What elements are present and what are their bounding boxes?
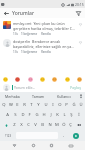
- button[interactable]: N: [46, 120, 53, 130]
- button[interactable]: J: [47, 110, 54, 120]
- button[interactable]: Z: [11, 120, 18, 130]
- staticText: Yorum ekle...: [14, 85, 36, 90]
- button[interactable]: X: [18, 120, 25, 130]
- button[interactable]: Emoji: [52, 77, 57, 82]
- staticText: mmlxy.cmt Yeni çıkan bu ürün gerçekten h…: [13, 21, 76, 31]
- button[interactable]: Q: [1, 100, 7, 110]
- button[interactable]: Emoji: [77, 77, 82, 82]
- button[interactable]: M: [53, 120, 60, 130]
- button[interactable]: Merhaba: [0, 92, 25, 100]
- button[interactable]: mmlxy.cmt Yeni çıkan bu ürün gerçekten h…: [0, 18, 85, 36]
- button[interactable]: T: [28, 100, 35, 110]
- button[interactable]: Y: [35, 100, 42, 110]
- button[interactable]: Beğen: [77, 21, 83, 27]
- staticText: E: [16, 102, 19, 108]
- button[interactable]: Paylaş: [69, 85, 82, 90]
- staticText: L: [63, 112, 66, 118]
- button[interactable]: Emoji: [28, 77, 33, 82]
- button[interactable]: D: [19, 110, 26, 120]
- staticText: W: [9, 102, 13, 108]
- button[interactable]: O: [56, 100, 63, 110]
- staticText: C: [27, 122, 30, 128]
- staticText: R: [23, 102, 26, 108]
- staticText: J: [50, 112, 52, 118]
- button[interactable]: Geri: [2, 9, 10, 17]
- button[interactable]: U: [42, 100, 49, 110]
- button[interactable]: S: [11, 110, 19, 120]
- button[interactable]: W: [7, 100, 14, 110]
- button[interactable]: Sesle yaz: [77, 92, 85, 100]
- button[interactable]: Emoji: [3, 77, 8, 82]
- staticText: 1 beğenme: [21, 50, 38, 54]
- button[interactable]: B: [39, 120, 46, 130]
- button[interactable]: Ü: [77, 100, 84, 110]
- button[interactable]: Ö: [60, 120, 67, 130]
- staticText: Merhaba: [5, 94, 20, 99]
- button[interactable]: Emoji: [15, 77, 20, 82]
- staticText: 13s: [13, 50, 18, 54]
- button[interactable]: Tamam: [25, 92, 51, 100]
- button[interactable]: F: [26, 110, 33, 120]
- button[interactable]: İ: [75, 110, 82, 120]
- button[interactable]: C: [25, 120, 32, 130]
- button[interactable]: G: [33, 110, 40, 120]
- staticText: Tamam: [32, 94, 45, 99]
- staticText: A: [6, 112, 9, 118]
- staticText: N: [48, 122, 52, 128]
- button[interactable]: Ğ: [70, 100, 77, 110]
- button[interactable]: Ş: [68, 110, 75, 120]
- button[interactable]: Ana ekran: [29, 141, 38, 150]
- staticText: K: [56, 112, 59, 118]
- staticText: Z: [13, 122, 16, 128]
- staticText: 1 beğenme: [21, 32, 38, 36]
- button[interactable]: Ç: [67, 120, 74, 130]
- staticText: ?123: [5, 134, 12, 138]
- staticText: Kullanıcı: [57, 94, 71, 99]
- button[interactable]: Yanıtla: [41, 50, 51, 54]
- button[interactable]: dostperlin Beraberce ancak başarabiliriz…: [0, 36, 85, 54]
- button[interactable]: R: [21, 100, 28, 110]
- button[interactable]: Beğen: [77, 39, 83, 45]
- staticText: dostperlin Beraberce ancak başarabiliriz…: [13, 39, 76, 49]
- staticText: S: [14, 112, 17, 118]
- staticText: P: [65, 102, 68, 108]
- button[interactable]: Emoji: [65, 77, 70, 82]
- staticText: Yorumlar: [12, 10, 35, 17]
- button[interactable]: ?123: [1, 131, 15, 140]
- button[interactable]: Sil: [74, 120, 84, 130]
- staticText: Yanıtla: [41, 50, 51, 54]
- button[interactable]: Klavyeyi gizle: [66, 141, 75, 150]
- staticText: G: [35, 112, 39, 118]
- button[interactable]: 1 beğenme: [21, 32, 38, 36]
- button[interactable]: Shift: [1, 120, 11, 130]
- staticText: İ: [78, 112, 80, 118]
- staticText: Ü: [79, 102, 83, 108]
- button[interactable]: L: [61, 110, 68, 120]
- button[interactable]: Geri: [10, 141, 19, 150]
- staticText: F: [28, 112, 31, 118]
- staticText: O: [58, 102, 62, 108]
- staticText: Ğ: [72, 102, 76, 108]
- button[interactable]: I: [49, 100, 56, 110]
- button[interactable]: Nokta: [59, 131, 68, 140]
- button[interactable]: Kullanıcı: [51, 92, 77, 100]
- staticText: Ş: [70, 112, 73, 118]
- staticText: Q: [2, 102, 6, 108]
- button[interactable]: P: [63, 100, 70, 110]
- button[interactable]: Emoji: [40, 77, 45, 82]
- button[interactable]: Yorum ekle...: [12, 85, 69, 90]
- button[interactable]: Gönder: [68, 131, 84, 140]
- button[interactable]: A: [3, 110, 11, 120]
- button[interactable]: E: [14, 100, 21, 110]
- staticText: 13s: [13, 32, 18, 36]
- button[interactable]: Yanıtla: [41, 32, 51, 36]
- staticText: B: [41, 122, 44, 128]
- staticText: I: [52, 102, 54, 108]
- button[interactable]: 1 beğenme: [21, 50, 38, 54]
- button[interactable]: H: [40, 110, 47, 120]
- button[interactable]: Filtrele: [74, 9, 83, 18]
- button[interactable]: V: [32, 120, 39, 130]
- button[interactable]: K: [54, 110, 61, 120]
- button[interactable]: Son kullanılanlar: [47, 141, 56, 150]
